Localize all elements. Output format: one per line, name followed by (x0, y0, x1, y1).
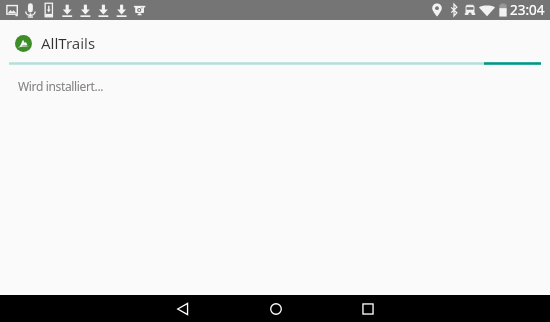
button[interactable]: Recent apps (345, 295, 391, 322)
staticText: AllTrails (41, 33, 96, 53)
button[interactable]: Home (253, 295, 299, 322)
button[interactable]: Back (160, 295, 206, 322)
staticText: 23:04 (510, 1, 545, 19)
button[interactable]: AllTrails app icon (0, 20, 550, 61)
other: AllTrails app icon (15, 35, 32, 52)
staticText: Wird installiert... (18, 78, 104, 94)
